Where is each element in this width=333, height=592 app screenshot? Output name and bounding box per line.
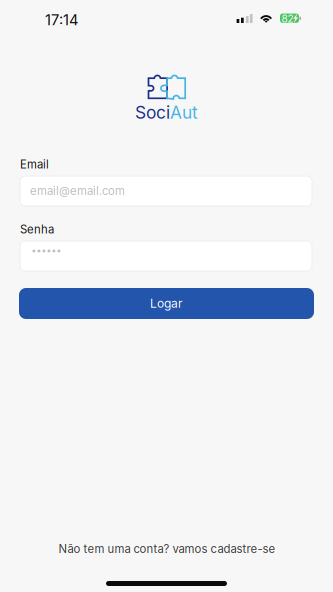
staticText: Soci [135, 102, 170, 123]
staticText: •••••• [31, 244, 61, 256]
button[interactable]: Logar [19, 288, 314, 319]
staticText: 17:14 [45, 11, 78, 29]
staticText: Não tem uma conta? vamos cadastre-se [58, 542, 275, 556]
staticText: email@email.com [30, 184, 125, 198]
staticText: 82 [282, 13, 294, 25]
button[interactable]: Não tem uma conta? vamos cadastre-se [42, 540, 292, 558]
staticText: Email [20, 158, 49, 171]
staticText: Aut [170, 102, 198, 123]
staticText: Logar [150, 296, 183, 311]
staticText: Senha [20, 223, 54, 236]
